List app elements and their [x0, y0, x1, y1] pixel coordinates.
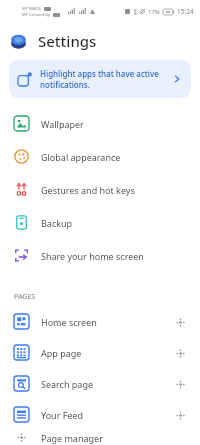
staticText: App page — [41, 347, 172, 359]
staticText: 17% — [148, 8, 160, 16]
staticText: Page manager — [41, 432, 188, 444]
button[interactable]: Global appearance — [0, 140, 200, 173]
button[interactable]: Page manager — [0, 430, 200, 445]
button[interactable]: Home screen — [0, 306, 200, 337]
staticText: 15:24 — [177, 7, 194, 16]
button[interactable]: Reorder App page — [172, 345, 188, 361]
staticText: PAGES — [14, 292, 36, 302]
staticText: Global appearance — [41, 151, 121, 163]
button[interactable]: App page — [0, 337, 200, 368]
staticText: Search page — [41, 378, 172, 390]
staticText: Highlight apps that have active notifica… — [40, 68, 168, 90]
button[interactable]: Wallpaper — [0, 107, 200, 140]
button[interactable]: Reorder Your Feed — [172, 407, 188, 423]
staticText: Share your home screen — [41, 250, 144, 262]
button[interactable]: Highlight apps that have active notifica… — [9, 60, 191, 98]
staticText: Backup — [41, 217, 73, 229]
staticText: Settings — [38, 31, 97, 51]
button[interactable]: Reorder Home screen — [172, 314, 188, 330]
button[interactable]: Gestures and hot keys — [0, 173, 200, 206]
button[interactable]: Share your home screen — [0, 239, 200, 272]
button[interactable]: Your Feed — [0, 399, 200, 430]
staticText: MY CelcomDigi — [22, 12, 51, 17]
button[interactable]: Backup — [0, 206, 200, 239]
button[interactable]: Search page — [0, 368, 200, 399]
staticText: Wallpaper — [41, 118, 84, 130]
staticText: MY MAXIS — [22, 6, 42, 11]
staticText: Your Feed — [41, 409, 172, 421]
staticText: Gestures and hot keys — [41, 184, 135, 196]
staticText: Home screen — [41, 316, 172, 328]
button[interactable]: Reorder Search page — [172, 376, 188, 392]
